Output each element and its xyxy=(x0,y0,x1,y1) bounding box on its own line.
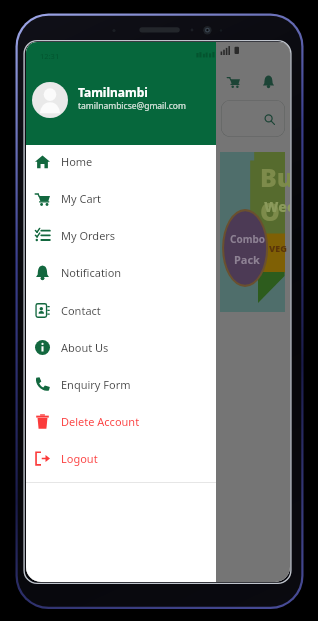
button[interactable]: My Cart xyxy=(26,180,216,217)
staticText: Tamilnambi xyxy=(78,84,148,100)
button[interactable]: Enquiry Form xyxy=(26,366,216,403)
staticText: Delete Account xyxy=(61,414,140,429)
button[interactable]: My Orders xyxy=(26,217,216,254)
staticText: Home xyxy=(61,154,93,169)
button[interactable]: Search xyxy=(221,100,285,137)
staticText: My Cart xyxy=(61,191,102,206)
staticText: 12:31 xyxy=(40,51,60,61)
staticText: Buy O xyxy=(260,160,290,228)
staticText: VEG xyxy=(269,242,287,254)
staticText: Pack xyxy=(234,252,260,267)
staticText: My Orders xyxy=(61,228,116,243)
button[interactable]: Cart xyxy=(223,71,243,91)
staticText: About Us xyxy=(61,340,109,355)
staticText: Enquiry Form xyxy=(61,377,131,392)
button[interactable]: About Us xyxy=(26,329,216,366)
button[interactable]: Notifications xyxy=(258,71,278,91)
button[interactable]: Contact xyxy=(26,292,216,329)
staticText: Week xyxy=(264,197,290,216)
staticText: tamilnambicse@gmail.com xyxy=(78,100,186,112)
staticText: Combo xyxy=(230,232,265,246)
button[interactable]: Notification xyxy=(26,254,216,291)
button[interactable]: Home xyxy=(26,143,216,180)
button[interactable]: Logout xyxy=(26,440,216,477)
button[interactable]: Delete Account xyxy=(26,403,216,440)
staticText: Notification xyxy=(61,265,122,280)
staticText: Logout xyxy=(61,451,98,466)
staticText: Contact xyxy=(61,303,101,318)
